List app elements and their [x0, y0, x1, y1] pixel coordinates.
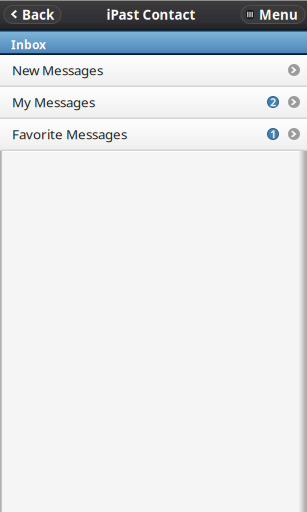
- staticText: 1: [270, 127, 276, 141]
- button[interactable]: Menu: [241, 5, 305, 23]
- button[interactable]: Back: [4, 5, 61, 23]
- staticText: 2: [270, 95, 276, 109]
- staticText: iPast Contact: [106, 6, 195, 23]
- staticText: My Messages: [12, 93, 95, 111]
- button[interactable]: Favorite Messages: [0, 119, 307, 151]
- button[interactable]: New Messages: [0, 55, 307, 87]
- staticText: Back: [22, 6, 54, 23]
- staticText: Inbox: [11, 36, 46, 52]
- staticText: Favorite Messages: [12, 125, 127, 143]
- button[interactable]: My Messages: [0, 87, 307, 119]
- staticText: Menu: [259, 6, 298, 23]
- staticText: New Messages: [12, 61, 103, 79]
